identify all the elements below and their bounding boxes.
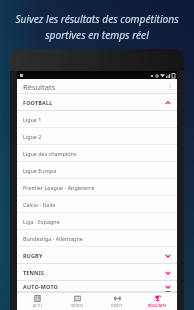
- button[interactable]: RUGBY: [17, 247, 177, 264]
- staticText: VIDEOS: [71, 303, 84, 308]
- button[interactable]: More options: [163, 79, 177, 94]
- button[interactable]: Résultats: [17, 79, 177, 94]
- staticText: Ligue 1: [23, 116, 42, 123]
- staticText: Ligue 2: [23, 133, 42, 140]
- staticText: Ligue des champions: [23, 150, 77, 157]
- staticText: TENNIS: [23, 269, 45, 276]
- button[interactable]: VIDEOS: [57, 292, 97, 310]
- staticText: Liga - Espagne: [23, 218, 60, 225]
- button[interactable]: Ligue 1: [17, 111, 177, 128]
- button[interactable]: AUTO-MOTO: [17, 281, 177, 292]
- staticText: Suivez les résultats des compétitions: [15, 12, 179, 26]
- staticText: AUTO-MOTO: [23, 283, 59, 290]
- button[interactable]: RÉSULTATS: [137, 292, 177, 310]
- staticText: RUGBY: [23, 252, 43, 259]
- button[interactable]: Premier League - Angleterre: [17, 179, 177, 196]
- staticText: Premier League - Angleterre: [23, 184, 95, 191]
- staticText: Ligue Europa: [23, 167, 57, 174]
- button[interactable]: DIRECT: [97, 292, 137, 310]
- staticText: sportives en temps réel: [45, 28, 149, 42]
- staticText: ACTU: [33, 303, 42, 308]
- button[interactable]: Ligue Europa: [17, 162, 177, 179]
- button[interactable]: Bundesliga - Allemagne: [17, 230, 177, 247]
- button[interactable]: Calcio - Italie: [17, 196, 177, 213]
- button[interactable]: Liga - Espagne: [17, 213, 177, 230]
- staticText: Résultats: [23, 82, 56, 92]
- staticText: Bundesliga - Allemagne: [23, 235, 83, 242]
- button[interactable]: Ligue des champions: [17, 145, 177, 162]
- staticText: RÉSULTATS: [148, 303, 167, 308]
- staticText: DIRECT: [111, 303, 123, 308]
- staticText: FOOTBALL: [23, 99, 53, 106]
- button[interactable]: Ligue 2: [17, 128, 177, 145]
- button[interactable]: FOOTBALL: [17, 94, 177, 111]
- button[interactable]: ACTU: [17, 292, 57, 310]
- button[interactable]: TENNIS: [17, 264, 177, 281]
- staticText: Calcio - Italie: [23, 201, 56, 208]
